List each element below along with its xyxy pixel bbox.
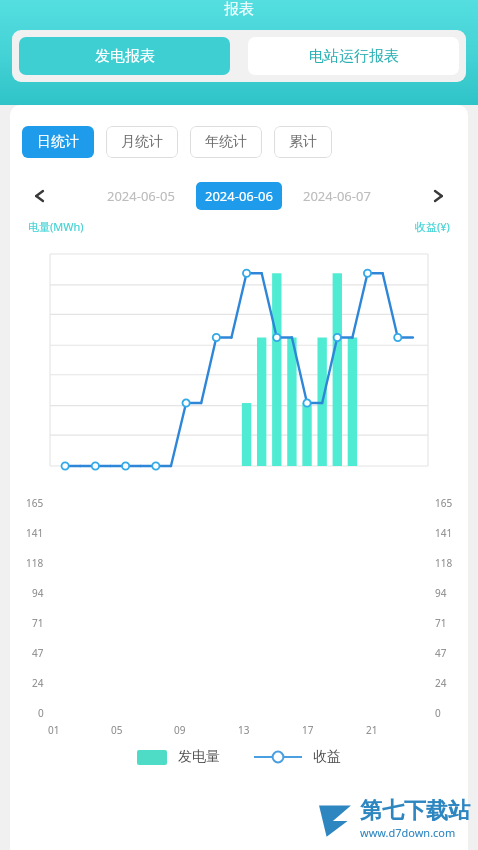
button[interactable]: 发电报表 <box>19 37 230 75</box>
staticText: 94 <box>435 586 447 600</box>
staticText: 94 <box>32 586 44 600</box>
staticText: 165 <box>435 496 453 510</box>
staticText: 电站运行报表 <box>309 47 399 66</box>
staticText: 2024-06-07 <box>303 187 371 205</box>
button[interactable]: 2024-06-07 <box>294 182 380 210</box>
staticText: 118 <box>26 556 44 570</box>
staticText: 47 <box>32 646 44 660</box>
staticText: 21 <box>366 723 378 737</box>
staticText: 71 <box>435 616 447 630</box>
button[interactable]: 累计 <box>274 126 332 158</box>
staticText: 2024-06-05 <box>107 187 175 205</box>
button[interactable]: 月统计 <box>106 126 178 158</box>
staticText: 47 <box>435 646 447 660</box>
staticText: 累计 <box>289 133 317 151</box>
staticText: 13 <box>238 723 250 737</box>
staticText: 17 <box>302 723 314 737</box>
button[interactable]: 2024-06-05 <box>98 182 184 210</box>
staticText: 24 <box>32 676 44 690</box>
button[interactable]: Next day <box>424 181 454 211</box>
staticText: 118 <box>435 556 453 570</box>
staticText: 2024-06-06 <box>205 187 273 205</box>
staticText: 收益 <box>313 748 341 766</box>
staticText: 月统计 <box>121 133 163 151</box>
button[interactable]: 日统计 <box>22 126 94 158</box>
staticText: 年统计 <box>205 133 247 151</box>
button[interactable]: 年统计 <box>190 126 262 158</box>
staticText: 发电报表 <box>95 47 155 66</box>
staticText: 电量(MWh) <box>28 219 84 234</box>
staticText: 日统计 <box>37 133 79 151</box>
staticText: 0 <box>38 706 44 720</box>
button[interactable]: 2024-06-06 <box>196 182 282 210</box>
staticText: 24 <box>435 676 447 690</box>
staticText: 09 <box>174 723 186 737</box>
button[interactable]: 电站运行报表 <box>248 37 459 75</box>
staticText: 报表 <box>224 0 254 19</box>
staticText: www.d7down.com <box>360 825 456 840</box>
staticText: 141 <box>435 526 453 540</box>
button[interactable]: Previous day <box>24 181 54 211</box>
staticText: 发电量 <box>178 748 220 766</box>
staticText: 01 <box>48 723 60 737</box>
staticText: 收益(¥) <box>415 219 450 234</box>
staticText: 141 <box>26 526 44 540</box>
staticText: 0 <box>435 706 441 720</box>
staticText: 05 <box>111 723 123 737</box>
staticText: 165 <box>26 496 44 510</box>
staticText: 71 <box>32 616 44 630</box>
staticText: 第七下载站 <box>360 797 470 825</box>
